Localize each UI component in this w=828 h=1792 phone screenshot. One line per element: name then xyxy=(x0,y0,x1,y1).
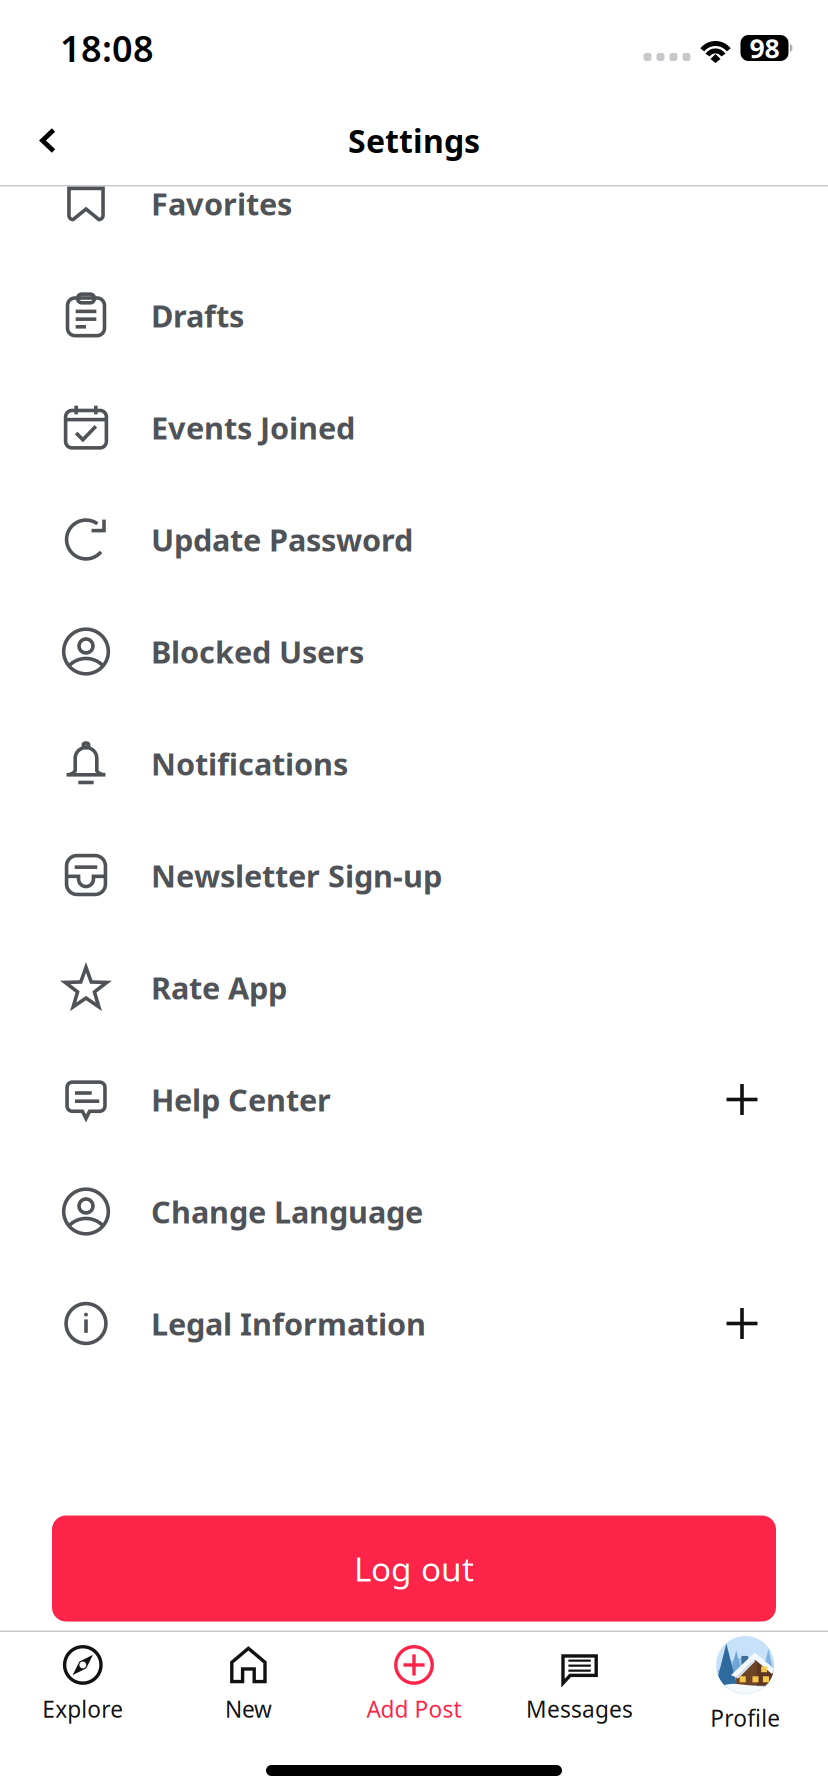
staticText: Log out xyxy=(354,1546,474,1591)
button[interactable]: Newsletter Sign-up xyxy=(0,819,828,931)
staticText: Drafts xyxy=(151,295,244,336)
button[interactable]: Rate App xyxy=(0,931,828,1043)
staticText: Help Center xyxy=(151,1079,331,1120)
button[interactable]: Profile xyxy=(662,1636,828,1733)
staticText: Explore xyxy=(42,1694,123,1724)
staticText: New xyxy=(225,1694,272,1724)
button[interactable]: Drafts xyxy=(0,259,828,371)
button[interactable]: Events Joined xyxy=(0,371,828,483)
staticText: 18:08 xyxy=(60,24,154,72)
staticText: Messages xyxy=(526,1694,633,1724)
button[interactable]: Update Password xyxy=(0,483,828,595)
staticText: 98 xyxy=(749,30,779,66)
staticText: Change Language xyxy=(151,1191,423,1232)
staticText: Legal Information xyxy=(151,1303,426,1344)
button[interactable]: Messages xyxy=(497,1645,662,1724)
staticText: Events Joined xyxy=(151,407,355,448)
staticText: Favorites xyxy=(151,183,292,224)
staticText: Newsletter Sign-up xyxy=(151,855,442,896)
staticText: Add Post xyxy=(366,1694,461,1724)
button[interactable]: Log out xyxy=(52,1515,776,1621)
button[interactable]: Favorites xyxy=(0,147,828,259)
button[interactable]: Explore xyxy=(0,1645,166,1724)
button[interactable]: Help Center xyxy=(0,1043,828,1155)
button[interactable]: Add Post xyxy=(331,1645,497,1724)
button[interactable]: New xyxy=(166,1645,331,1724)
staticText: Rate App xyxy=(151,967,287,1008)
staticText: Profile xyxy=(710,1703,780,1733)
button[interactable]: Legal Information xyxy=(0,1267,828,1379)
staticText: Update Password xyxy=(151,519,413,560)
staticText: Settings xyxy=(348,119,480,162)
button[interactable]: Back xyxy=(0,103,86,177)
button[interactable]: Notifications xyxy=(0,707,828,819)
button[interactable]: Blocked Users xyxy=(0,595,828,707)
staticText: Notifications xyxy=(151,743,348,784)
staticText: Blocked Users xyxy=(151,631,364,672)
button[interactable]: Change Language xyxy=(0,1155,828,1267)
